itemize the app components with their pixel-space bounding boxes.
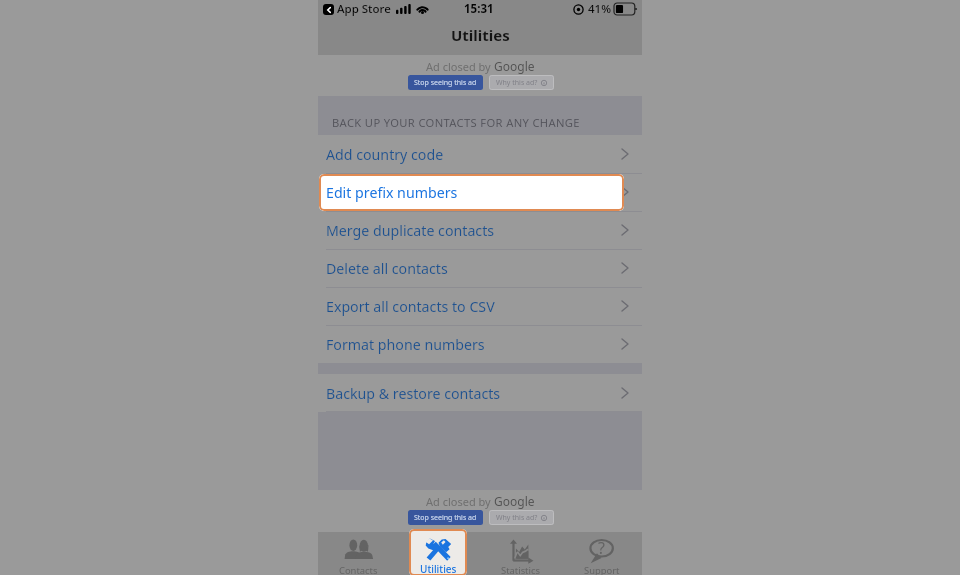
button[interactable]: Edit prefix numbers: [319, 174, 624, 211]
staticText: Edit prefix numbers: [326, 183, 458, 202]
staticText: Backup & restore contacts: [326, 384, 501, 403]
staticText: Merge duplicate contacts: [326, 221, 495, 240]
staticText: Statistics: [501, 564, 540, 575]
button[interactable]: Why this ad?: [489, 510, 554, 525]
staticText: Stop seeing this ad: [414, 513, 477, 523]
staticText: App Store: [337, 1, 391, 17]
staticText: Support: [584, 564, 620, 575]
staticText: BACK UP YOUR CONTACTS FOR ANY CHANGE: [332, 115, 580, 130]
button[interactable]: Backup & restore contacts: [318, 374, 642, 412]
staticText: Ad closed by: [426, 59, 494, 74]
button[interactable]: Export all contacts to CSV: [318, 287, 642, 325]
staticText: Google: [494, 58, 535, 74]
button[interactable]: Why this ad?: [489, 75, 554, 90]
staticText: ?: [598, 537, 605, 559]
button[interactable]: Format phone numbers: [318, 325, 642, 363]
button[interactable]: Edit prefix numbers: [318, 173, 642, 211]
staticText: Export all contacts to CSV: [326, 297, 495, 316]
staticText: Stop seeing this ad: [414, 78, 477, 88]
staticText: 41%: [588, 1, 611, 17]
button[interactable]: Merge duplicate contacts: [318, 211, 642, 249]
staticText: 15:31: [464, 1, 494, 17]
staticText: Utilities: [420, 562, 457, 575]
staticText: Why this ad?: [496, 78, 538, 88]
button[interactable]: Stop seeing this ad: [408, 510, 483, 525]
staticText: Ad closed by: [426, 494, 494, 509]
staticText: Contacts: [339, 564, 378, 575]
staticText: Format phone numbers: [326, 335, 485, 354]
button[interactable]: Add country code: [318, 135, 642, 173]
staticText: Delete all contacts: [326, 259, 448, 278]
staticText: Utilities: [423, 564, 457, 575]
button[interactable]: Back to App Store: [323, 4, 334, 15]
button[interactable]: Utilities: [409, 529, 467, 575]
button[interactable]: Stop seeing this ad: [408, 75, 483, 90]
staticText: Google: [494, 493, 535, 509]
button[interactable]: Statistics: [480, 532, 561, 575]
staticText: Edit prefix numbers: [326, 183, 458, 202]
staticText: Why this ad?: [496, 513, 538, 523]
button[interactable]: Delete all contacts: [318, 249, 642, 287]
button[interactable]: ?: [561, 532, 642, 575]
button[interactable]: Contacts: [318, 532, 399, 575]
staticText: Utilities: [451, 25, 510, 45]
button[interactable]: Utilities: [399, 532, 480, 575]
staticText: Add country code: [326, 145, 444, 164]
